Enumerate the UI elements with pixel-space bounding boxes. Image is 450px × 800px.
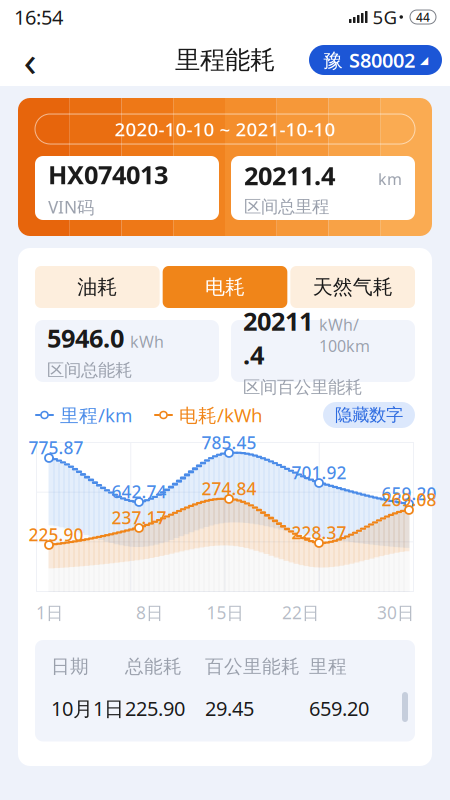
staticText: 日期 [51,655,89,678]
staticText: 隐藏数字 [335,404,403,426]
button[interactable]: 油耗 [35,266,160,308]
staticText: 785.45 [201,431,256,454]
staticText: 659.20 [309,695,369,721]
button[interactable]: 2020-10-10 ~ 2021-10-10 [35,114,415,144]
staticText: 天然气耗 [313,275,393,299]
staticText: 16:54 [14,4,63,30]
staticText: 29.45 [205,695,254,721]
staticText: 775.87 [28,436,83,459]
staticText: 5946.0 [47,321,124,355]
staticText: 1日 [36,601,63,624]
staticText: 701.92 [291,461,346,484]
staticText: ◢ [420,54,428,66]
staticText: 里程 [309,655,347,678]
staticText: 30日 [377,601,414,624]
staticText: 659.20 [381,482,436,505]
staticText: 5G [372,5,397,29]
staticText: 20211.4 [244,158,335,192]
staticText: 8日 [136,601,163,624]
button[interactable]: 隐藏数字 [323,402,415,428]
staticText: 总能耗 [125,655,182,678]
staticText: 区间总能耗 [47,360,132,381]
staticText: 20211.4 [243,304,313,371]
staticText: 22日 [282,601,319,624]
staticText: 642.74 [111,480,166,503]
staticText: 228.37 [291,521,346,544]
staticText: VIN码 [48,195,94,218]
button[interactable]: 电耗 [163,266,287,308]
staticText: 电耗/kWh [179,403,263,427]
staticText: 电耗 [205,275,245,299]
staticText: 百公里能耗 [205,655,300,678]
staticText: 里程能耗 [175,44,275,75]
staticText: 油耗 [77,275,117,299]
staticText: 10月1日 [51,695,124,721]
staticText: kWh [130,331,164,352]
button[interactable]: 豫 S80002 [309,45,442,75]
button[interactable]: Back [8,38,52,82]
staticText: kWh/100km [319,314,370,356]
staticText: 豫 S80002 [323,47,415,73]
staticText: 区间百公里能耗 [243,376,362,398]
staticText: HX074013 [48,158,168,191]
staticText: 237.17 [111,506,166,529]
staticText: 区间总里程 [244,196,329,217]
staticText: 225.90 [125,695,185,721]
staticText: 2020-10-10 ~ 2021-10-10 [114,117,335,141]
staticText: 274.84 [201,477,256,500]
button[interactable]: 天然气耗 [290,266,415,308]
staticText: 225.90 [28,523,83,546]
staticText: 44 [416,9,430,25]
staticText: 里程/km [60,403,132,427]
staticText: 269.08 [381,488,436,511]
staticText: ‹ [23,32,36,88]
staticText: 15日 [206,601,243,624]
staticText: km [378,168,402,190]
